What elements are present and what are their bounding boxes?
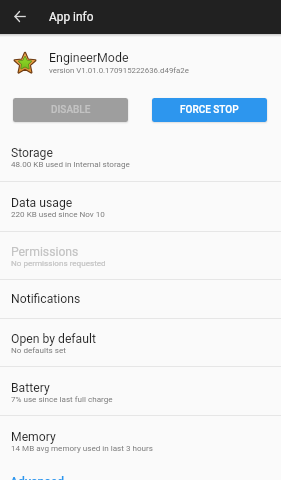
button[interactable]: Permissions (0, 232, 281, 279)
staticText: App info (49, 10, 94, 24)
staticText: 220 KB used since Nov 10 (11, 209, 105, 218)
button[interactable]: DISABLE (13, 98, 128, 122)
button[interactable]: Advanced (0, 464, 281, 480)
staticText: Notifications (11, 292, 81, 306)
button[interactable]: Battery (0, 367, 281, 415)
staticText: 7% use since last full charge (11, 394, 113, 403)
staticText: Open by default (11, 332, 96, 346)
staticText: DISABLE (51, 104, 91, 116)
staticText: Permissions (11, 245, 79, 259)
staticText: FORCE STOP (180, 104, 239, 116)
button[interactable]: Back (0, 0, 38, 34)
staticText: Advanced (10, 475, 65, 480)
button[interactable]: FORCE STOP (152, 98, 267, 122)
button[interactable]: Memory (0, 416, 281, 464)
staticText: Battery (11, 381, 50, 395)
staticText: Storage (11, 146, 53, 160)
staticText: No permissions requested (11, 258, 106, 267)
button[interactable]: Notifications (0, 280, 281, 318)
staticText: No defaults set (11, 345, 66, 354)
button[interactable]: Data usage (0, 182, 281, 231)
staticText: Data usage (11, 196, 73, 210)
staticText: EngineerMode (49, 50, 129, 65)
staticText: 14 MB avg memory used in last 3 hours (11, 443, 153, 452)
staticText: 48.00 KB used in Internal storage (11, 159, 130, 168)
button[interactable]: Storage (0, 132, 281, 181)
staticText: Memory (11, 430, 56, 444)
button[interactable]: Open by default (0, 319, 281, 366)
staticText: version V1.01.0.170915222636.d49fa2e (49, 66, 189, 75)
